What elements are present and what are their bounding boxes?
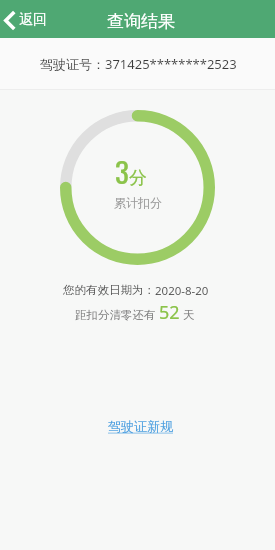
staticText: 驾驶证新规	[108, 418, 173, 434]
button[interactable]: 驾驶证新规	[102, 412, 179, 440]
staticText: 累计扣分	[114, 195, 162, 210]
staticText: 距扣分清零还有	[75, 307, 159, 323]
staticText: 52	[159, 300, 180, 325]
staticText: 返回	[19, 11, 47, 29]
staticText: 2020-8-20	[155, 283, 209, 299]
staticText: 3	[115, 149, 129, 192]
staticText: 天	[180, 307, 195, 323]
staticText: 分	[129, 167, 147, 190]
staticText: 查询结果	[107, 11, 175, 32]
button[interactable]: 返回	[0, 5, 55, 33]
staticText: 您的有效日期为：	[63, 283, 155, 297]
staticText: 驾驶证号：371425********2523	[40, 55, 237, 73]
